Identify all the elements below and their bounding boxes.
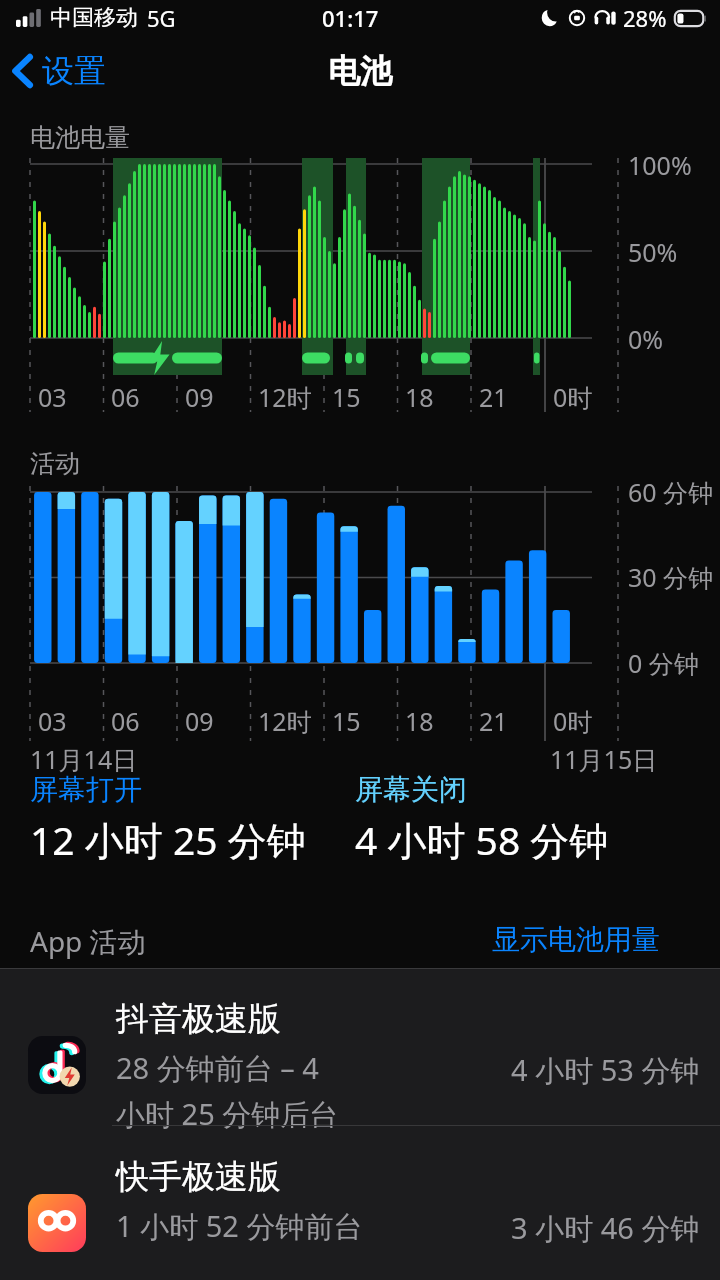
button[interactable]: 显示电池用量 xyxy=(492,922,660,957)
other: 抖音极速版 图标 xyxy=(28,1036,86,1094)
button[interactable]: 屏幕打开 xyxy=(30,772,306,866)
staticText: 5G xyxy=(147,3,176,33)
staticText: 屏幕打开 xyxy=(30,772,142,807)
staticText: 11月15日 xyxy=(550,742,658,776)
staticText: 0 分钟 xyxy=(628,646,699,680)
staticText: 电池电量 xyxy=(30,122,130,153)
button[interactable]: 设置 xyxy=(0,43,122,99)
staticText: 12时 xyxy=(258,380,312,414)
staticText: 12 小时 25 分钟 xyxy=(30,813,306,866)
staticText: 12时 xyxy=(258,704,312,738)
staticText: 4 小时 58 分钟 xyxy=(355,813,609,866)
staticText: 0% xyxy=(628,322,664,356)
staticText: 中国移动 xyxy=(50,4,138,32)
staticText: 03 xyxy=(38,704,67,738)
staticText: 60 分钟 xyxy=(628,475,714,509)
staticText: 15 xyxy=(332,704,361,738)
staticText: 100% xyxy=(628,148,692,182)
staticText: 06 xyxy=(111,704,140,738)
staticText: 屏幕关闭 xyxy=(355,772,467,807)
staticText: 显示电池用量 xyxy=(492,922,660,957)
staticText: 0时 xyxy=(553,704,593,738)
staticText: 21 xyxy=(479,380,508,414)
staticText: 3 小时 46 分钟 xyxy=(511,1208,700,1248)
staticText: 03 xyxy=(38,380,67,414)
staticText: 活动 xyxy=(30,448,80,479)
staticText: 1 小时 52 分钟前台 xyxy=(116,1206,363,1246)
staticText: 0时 xyxy=(553,380,593,414)
staticText: 30 分钟 xyxy=(628,560,714,594)
staticText: 28% xyxy=(623,3,667,33)
staticText: 09 xyxy=(185,704,214,738)
staticText: 11月14日 xyxy=(30,742,138,776)
staticText: 4 小时 53 分钟 xyxy=(511,1050,700,1090)
other: 快手极速版 图标 xyxy=(28,1194,86,1252)
button[interactable]: 快手极速版 图标 xyxy=(0,1140,720,1262)
staticText: 50% xyxy=(628,235,678,269)
staticText: 快手极速版 xyxy=(116,1156,281,1198)
staticText: 15 xyxy=(332,380,361,414)
staticText: 01:17 xyxy=(322,3,379,33)
staticText: 09 xyxy=(185,380,214,414)
button[interactable]: 屏幕关闭 xyxy=(355,772,609,866)
staticText: 电池 xyxy=(328,51,392,91)
staticText: 28 分钟前台 – 4 xyxy=(116,1048,319,1088)
staticText: 21 xyxy=(479,704,508,738)
staticText: 18 xyxy=(405,704,434,738)
staticText: 小时 25 分钟后台 xyxy=(116,1094,339,1134)
staticText: 抖音极速版 xyxy=(116,998,281,1040)
button[interactable]: 抖音极速版 图标 xyxy=(0,982,720,1150)
staticText: App 活动 xyxy=(30,922,146,960)
staticText: 06 xyxy=(111,380,140,414)
staticText: 18 xyxy=(405,380,434,414)
staticText: 设置 xyxy=(42,51,106,91)
